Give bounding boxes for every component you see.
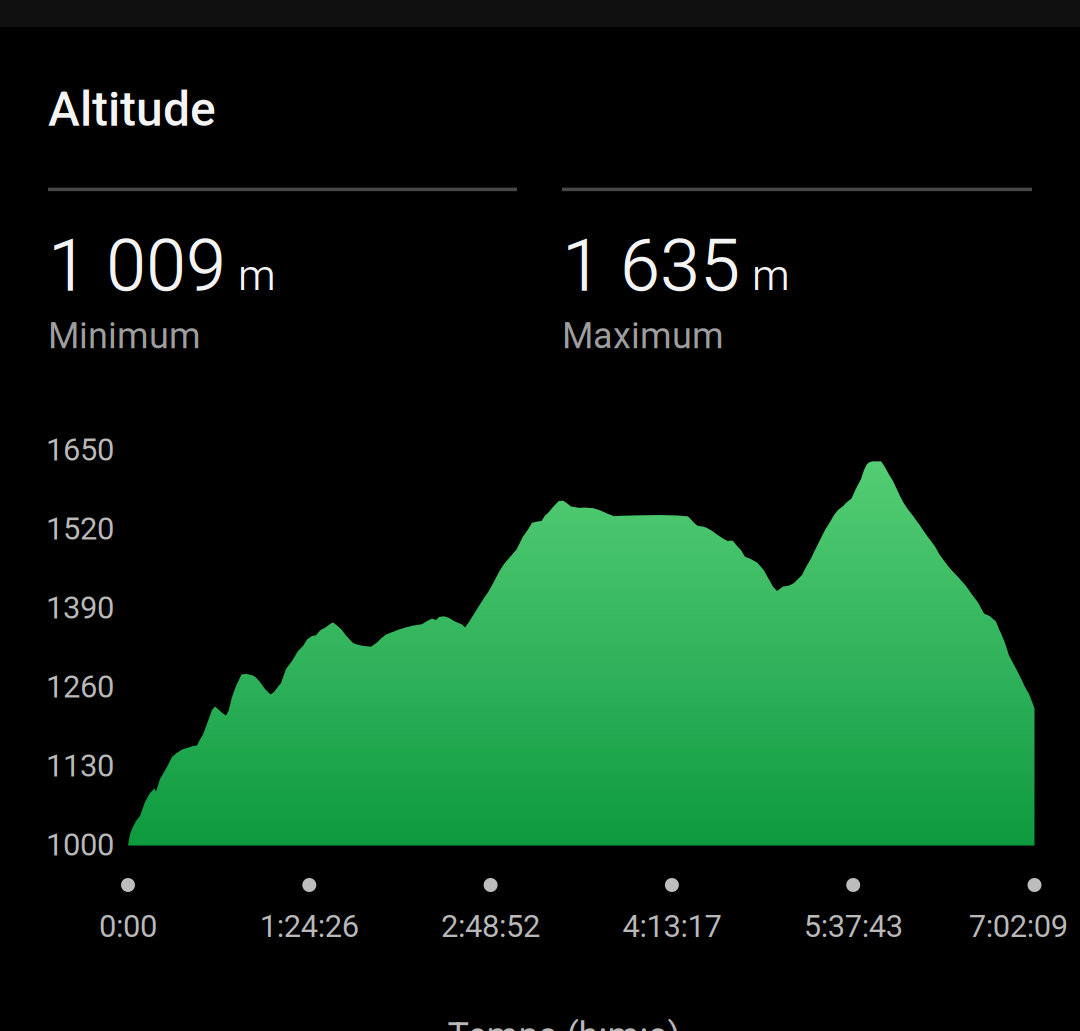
staticText: 5:37:43 bbox=[804, 908, 903, 945]
staticText: Maximum bbox=[562, 315, 724, 357]
staticText: Temps (h:m:s) bbox=[447, 1015, 680, 1031]
staticText: 4:13:17 bbox=[622, 908, 721, 945]
staticText: 1000 bbox=[46, 827, 114, 863]
staticText: 1390 bbox=[46, 590, 114, 626]
staticText: 1:24:26 bbox=[260, 908, 359, 945]
staticText: 1650 bbox=[46, 432, 114, 468]
staticText: Altitude bbox=[48, 81, 216, 137]
staticText: 1520 bbox=[46, 511, 114, 547]
staticText: m bbox=[238, 250, 276, 300]
staticText: 2:48:52 bbox=[441, 908, 540, 945]
staticText: 1 009 bbox=[48, 224, 226, 308]
staticText: m bbox=[752, 250, 790, 300]
staticText: 1 635 bbox=[562, 224, 740, 308]
staticText: Minimum bbox=[48, 315, 201, 357]
staticText: 7:02:09 bbox=[969, 908, 1068, 945]
staticText: 0:00 bbox=[99, 908, 157, 945]
staticText: 1130 bbox=[46, 748, 114, 784]
staticText: 1260 bbox=[46, 669, 114, 705]
